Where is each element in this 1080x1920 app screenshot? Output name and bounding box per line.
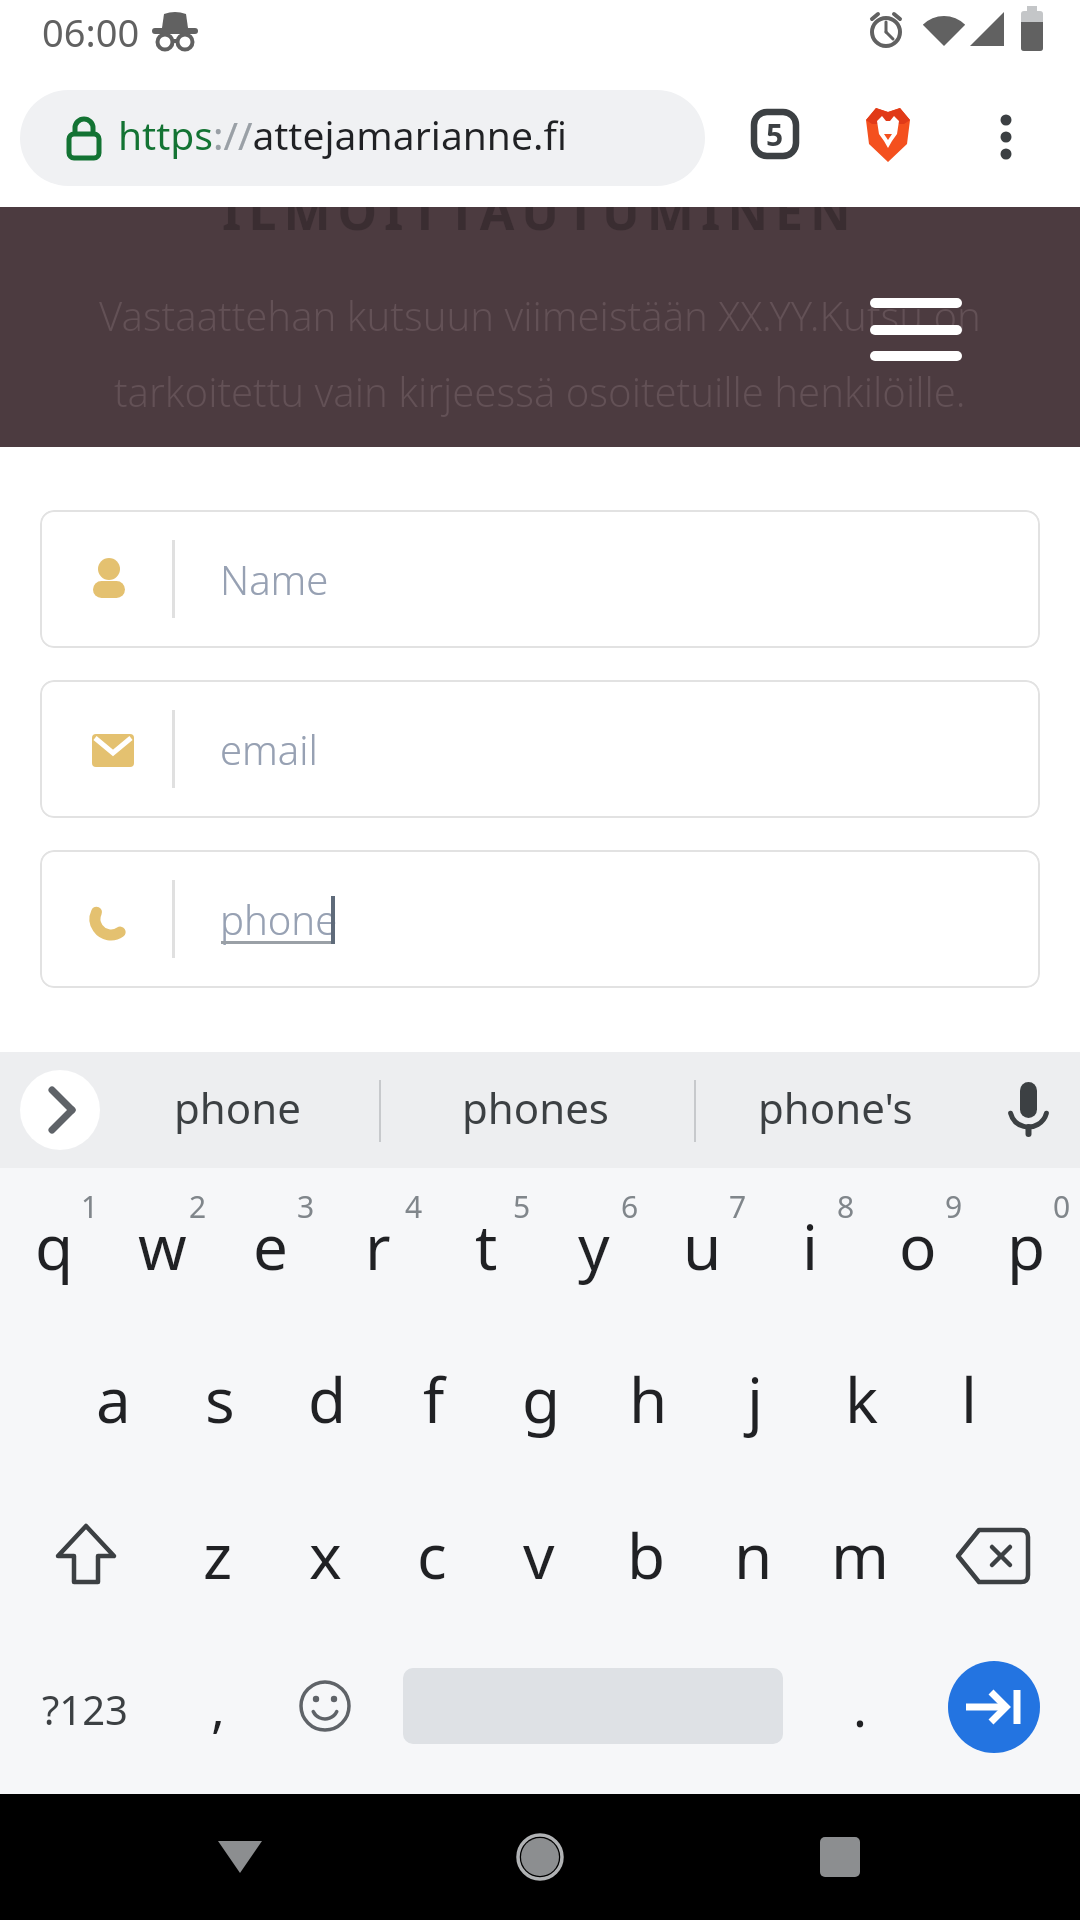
staticText: e (253, 1204, 288, 1288)
button[interactable]: c (379, 1480, 485, 1630)
button[interactable]: . (820, 1656, 900, 1756)
button[interactable]: h (595, 1324, 701, 1474)
button[interactable]: 5 (748, 108, 802, 160)
button[interactable]: s (167, 1324, 273, 1474)
staticText: d (308, 1357, 347, 1441)
button[interactable]: i (756, 1180, 864, 1312)
button[interactable]: o (864, 1180, 972, 1312)
staticText: tarkoitettu vain kirjeessä osoitetuille … (114, 364, 966, 418)
button[interactable]: z (165, 1480, 271, 1630)
button[interactable]: q (0, 1180, 108, 1312)
button[interactable]: x (272, 1480, 378, 1630)
staticText: u (683, 1204, 722, 1288)
staticText: 3 (297, 1186, 315, 1224)
staticText: phone (174, 1079, 301, 1135)
staticText: a (96, 1357, 131, 1441)
staticText: Name (220, 552, 329, 606)
button[interactable]: phone (137, 1079, 337, 1135)
staticText: phone (220, 892, 338, 946)
staticText: j (747, 1357, 763, 1441)
button[interactable]: t (432, 1180, 540, 1312)
staticText: https://attejamarianne.fi (118, 108, 567, 161)
staticText: 2 (189, 1186, 207, 1224)
button[interactable] (868, 296, 964, 362)
staticText: m (831, 1513, 889, 1597)
staticText: ILMOITTAUTUMINEN (222, 207, 858, 245)
button[interactable] (860, 104, 916, 166)
button[interactable]: d (274, 1324, 380, 1474)
staticText: w (138, 1204, 187, 1288)
button[interactable] (913, 1480, 1073, 1632)
staticText: phone's (758, 1079, 913, 1135)
staticText: 06:00 (42, 6, 140, 52)
staticText: f (423, 1357, 445, 1441)
button[interactable]: f (381, 1324, 487, 1474)
staticText: 0 (1053, 1186, 1071, 1224)
staticText: s (205, 1357, 235, 1441)
staticText: p (1007, 1204, 1046, 1288)
staticText: k (845, 1357, 879, 1441)
button[interactable]: g (488, 1324, 594, 1474)
button[interactable] (450, 1794, 630, 1920)
staticText: o (899, 1204, 937, 1288)
button[interactable] (40, 850, 1040, 988)
staticText: ?123 (42, 1682, 128, 1736)
staticText: r (365, 1204, 391, 1288)
staticText: h (629, 1357, 668, 1441)
button[interactable]: a (60, 1324, 166, 1474)
button[interactable]: b (593, 1480, 699, 1630)
button[interactable] (992, 108, 1020, 166)
staticText: v (523, 1513, 555, 1597)
staticText: 7 (729, 1186, 747, 1224)
button[interactable]: j (702, 1324, 808, 1474)
staticText: email (220, 722, 318, 776)
button[interactable]: phone's (735, 1079, 935, 1135)
staticText: b (627, 1513, 666, 1597)
staticText: n (734, 1513, 773, 1597)
button[interactable]: u (648, 1180, 756, 1312)
button[interactable]: p (972, 1180, 1080, 1312)
staticText: 8 (837, 1186, 855, 1224)
staticText: x (309, 1513, 342, 1597)
staticText: Vastaattehan kutsuun viimeistään XX.YY.K… (99, 288, 981, 342)
staticText: c (417, 1513, 447, 1597)
button[interactable] (20, 90, 705, 186)
staticText: i (802, 1204, 818, 1288)
button[interactable] (40, 680, 1040, 818)
button[interactable]: phones (435, 1079, 635, 1135)
button[interactable] (20, 1070, 100, 1150)
button[interactable] (6, 1480, 166, 1632)
button[interactable] (150, 1794, 330, 1920)
staticText: q (35, 1204, 74, 1288)
staticText: y (578, 1204, 610, 1288)
staticText: 9 (945, 1186, 963, 1224)
button[interactable]: e (216, 1180, 324, 1312)
button[interactable]: l (916, 1324, 1022, 1474)
staticText: z (203, 1513, 233, 1597)
button[interactable] (948, 1661, 1040, 1753)
button[interactable]: r (324, 1180, 432, 1312)
staticText: l (961, 1357, 977, 1441)
staticText: 5 (766, 114, 784, 155)
staticText: 1 (81, 1186, 99, 1224)
staticText: . (853, 1671, 867, 1742)
button[interactable]: n (700, 1480, 806, 1630)
staticText: phones (462, 1079, 609, 1135)
button[interactable]: v (486, 1480, 592, 1630)
staticText: , (211, 1671, 225, 1742)
button[interactable] (40, 510, 1040, 648)
button[interactable] (1000, 1076, 1056, 1140)
staticText: 5 (513, 1186, 531, 1224)
button[interactable]: w (108, 1180, 216, 1312)
staticText: 6 (621, 1186, 639, 1224)
staticText: 4 (405, 1186, 423, 1224)
button[interactable]: k (809, 1324, 915, 1474)
staticText: t (475, 1204, 498, 1288)
button[interactable]: ?123 (20, 1634, 150, 1784)
button[interactable]: m (807, 1480, 913, 1630)
button[interactable] (750, 1794, 930, 1920)
button[interactable]: y (540, 1180, 648, 1312)
button[interactable] (285, 1666, 365, 1746)
button[interactable]: , (168, 1656, 268, 1756)
